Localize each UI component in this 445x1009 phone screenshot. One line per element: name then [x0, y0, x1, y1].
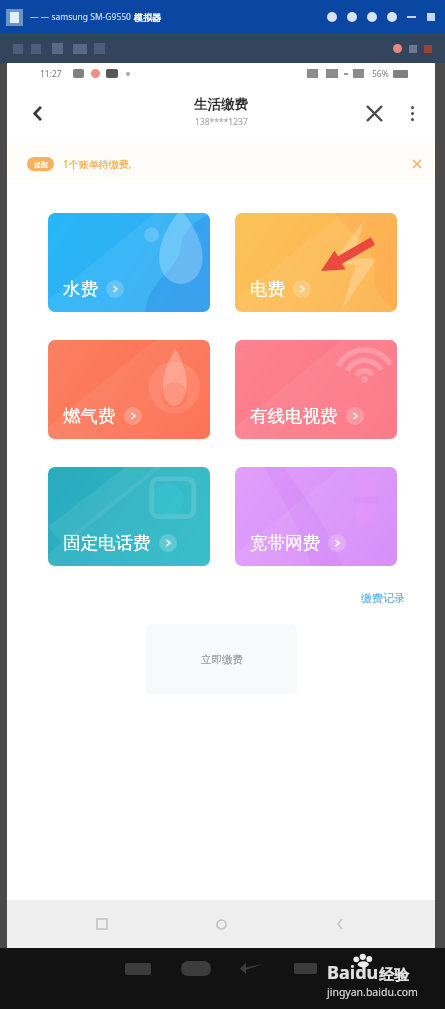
button[interactable]: 燃气费 [48, 340, 210, 439]
button[interactable]: Back [20, 95, 56, 131]
staticText: — — samsung SM-G9550 [30, 11, 134, 23]
staticText: 缴费记录 [361, 591, 405, 605]
button[interactable]: 水费 [48, 213, 210, 312]
staticText: Baidu [327, 960, 379, 985]
button[interactable]: Back key [240, 962, 264, 974]
staticText: 经验 [379, 966, 409, 985]
staticText: 水费 [63, 278, 98, 300]
button[interactable]: Home key [181, 961, 211, 976]
button[interactable]: Window action [367, 12, 377, 22]
button[interactable]: Dismiss [409, 156, 425, 172]
staticText: 有线电视费 [250, 405, 338, 427]
staticText: 燃气费 [63, 405, 116, 427]
staticText: jingyan.baidu.com [327, 985, 418, 999]
staticText: 1个账单待缴费, [63, 157, 132, 171]
button[interactable]: Recents [78, 900, 126, 948]
button[interactable]: 固定电话费 [48, 467, 210, 566]
button[interactable]: Window action [347, 12, 357, 22]
button[interactable]: More options [396, 97, 428, 129]
button[interactable]: 电费 [235, 213, 397, 312]
staticText: 138****1237 [195, 116, 248, 128]
staticText: 模拟器 [134, 12, 161, 23]
staticText: 立即缴费 [201, 653, 243, 666]
staticText: 11:27 [40, 68, 62, 80]
staticText: 提醒 [34, 160, 48, 169]
staticText: 固定电话费 [63, 532, 151, 554]
button[interactable]: Menu key [125, 963, 151, 975]
button[interactable]: Home [197, 900, 245, 948]
button[interactable]: 立即缴费 [146, 624, 297, 694]
button[interactable]: Window action [387, 12, 397, 22]
button[interactable]: Close [352, 91, 396, 135]
button[interactable]: Window action [327, 12, 337, 22]
button[interactable]: 有线电视费 [235, 340, 397, 439]
button[interactable]: Back [316, 900, 364, 948]
button[interactable]: Power key [294, 963, 317, 974]
staticText: 56% [372, 68, 389, 80]
button[interactable]: 宽带网费 [235, 467, 397, 566]
staticText: 生活缴费 [194, 96, 248, 113]
staticText: 宽带网费 [250, 532, 320, 554]
button[interactable]: 缴费记录 [358, 588, 408, 608]
staticText: 电费 [250, 278, 285, 300]
